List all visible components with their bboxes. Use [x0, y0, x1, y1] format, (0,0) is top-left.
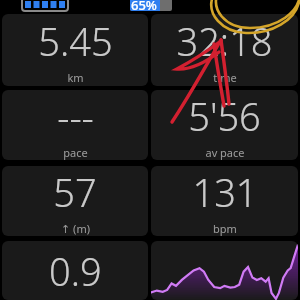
staticText: 5'56	[188, 90, 261, 142]
staticText: 65%	[131, 0, 157, 10]
button[interactable]: 131	[151, 166, 298, 236]
staticText: 5.45	[38, 15, 113, 67]
staticText: 57	[53, 166, 97, 218]
staticText: bpm	[213, 221, 237, 236]
button[interactable]: ---	[2, 90, 148, 160]
staticText: time	[213, 70, 237, 85]
button[interactable]: 32:18	[151, 14, 298, 86]
staticText: 32:18	[176, 15, 273, 67]
staticText: av pace	[205, 145, 245, 160]
staticText: 0.9	[49, 245, 102, 297]
staticText: km	[67, 70, 84, 85]
other: Battery	[22, 0, 68, 11]
staticText: ↑ (m)	[61, 221, 90, 236]
button[interactable]: 5.45	[2, 14, 148, 86]
staticText: pace	[63, 145, 88, 160]
staticText: 131	[192, 166, 258, 218]
button[interactable]: Elevation chart	[151, 241, 298, 300]
button[interactable]: 57	[2, 166, 148, 236]
button[interactable]: 0.9	[2, 241, 148, 300]
button[interactable]: 5'56	[151, 90, 298, 160]
staticText: ---	[57, 90, 94, 142]
